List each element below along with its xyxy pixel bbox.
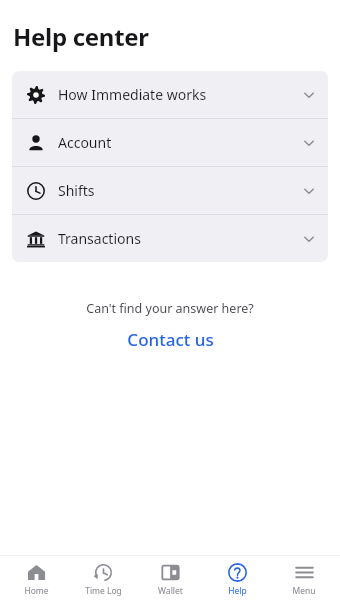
staticText: Menu xyxy=(292,585,316,597)
staticText: Home xyxy=(24,585,49,597)
button[interactable]: Wallet xyxy=(139,556,201,604)
button[interactable]: How Immediate works xyxy=(12,71,328,118)
button[interactable]: Home xyxy=(5,556,67,604)
staticText: Can't find your answer here? xyxy=(0,300,340,317)
button[interactable]: Time Log xyxy=(72,556,134,604)
button[interactable]: Shifts xyxy=(12,167,328,214)
staticText: Help xyxy=(228,585,247,597)
button[interactable]: Contact us xyxy=(117,325,224,354)
staticText: How Immediate works xyxy=(58,85,207,104)
button[interactable]: Transactions xyxy=(12,215,328,262)
staticText: Help center xyxy=(13,20,149,53)
button[interactable]: Menu xyxy=(273,556,335,604)
staticText: Shifts xyxy=(58,181,95,200)
button[interactable]: Account xyxy=(12,119,328,166)
staticText: Time Log xyxy=(85,585,122,597)
button[interactable]: Help xyxy=(206,556,268,604)
staticText: Transactions xyxy=(58,229,141,248)
staticText: Wallet xyxy=(158,585,183,597)
staticText: Account xyxy=(58,133,112,152)
